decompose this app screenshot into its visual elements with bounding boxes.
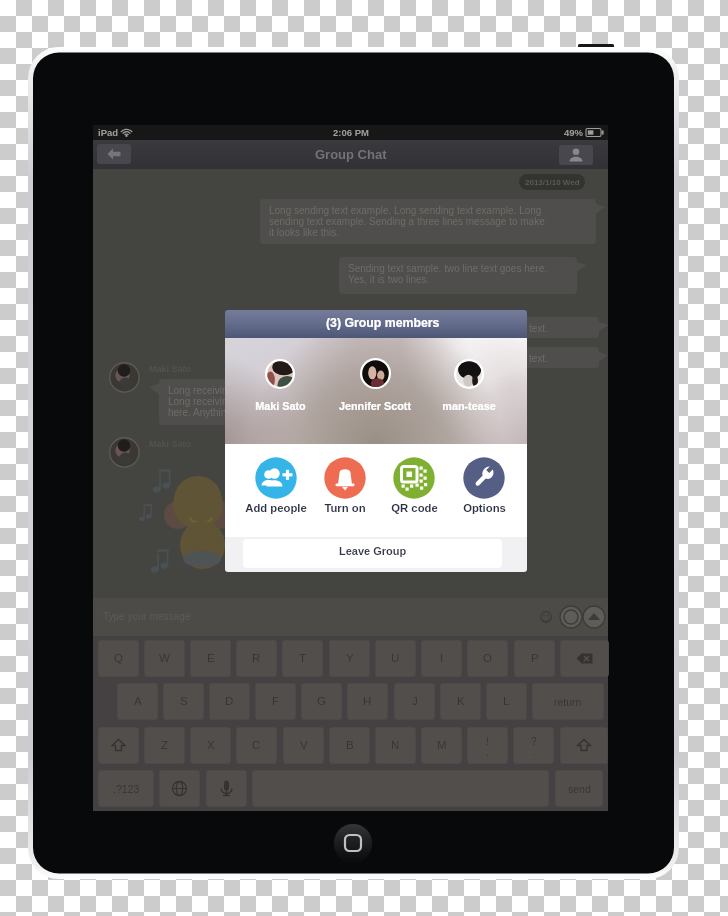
button[interactable]: Jennifer Scott [329,358,421,420]
button[interactable]: D [209,683,250,720]
button[interactable]: E [190,640,231,677]
button[interactable] [560,727,608,764]
button[interactable]: Turn on [301,457,389,519]
staticText: H [363,695,372,708]
button[interactable] [98,727,139,764]
staticText: Add people [245,502,307,515]
button[interactable]: Maki Sato [234,359,326,421]
staticText: Maki Sato [149,364,192,374]
staticText: C [252,739,261,752]
button[interactable]: Group members [559,145,593,165]
button[interactable]: F [255,683,296,720]
button[interactable]: return [532,683,604,720]
button[interactable]: send [555,770,603,807]
staticText: here. Anything here. [168,407,258,418]
staticText: , [486,747,489,756]
staticText: Options [463,502,506,515]
staticText: G [317,695,326,708]
staticText: Sending text sample, two line text goes … [348,263,548,274]
staticText: short text. [504,353,548,364]
button[interactable]: R [236,640,277,677]
staticText: ? [531,736,537,747]
button[interactable]: K [440,683,481,720]
button[interactable]: QR code [370,457,458,519]
staticText: ! [486,736,489,747]
button[interactable]: H [347,683,388,720]
staticText: iPad [98,127,119,138]
staticText: Long sending text example. Long sending … [269,205,542,216]
staticText: Type your message [103,611,191,622]
button[interactable]: M [421,727,462,764]
button[interactable]: G [301,683,342,720]
button[interactable]: B [329,727,370,764]
staticText: Yes, it is two lines. [348,274,430,285]
staticText: N [391,739,400,752]
staticText: Turn on [324,502,366,515]
staticText: L [503,695,510,708]
staticText: Long receiving text goes [168,396,277,407]
button[interactable]: Q [98,640,139,677]
button[interactable]: W [144,640,185,677]
staticText: F [272,695,280,708]
button[interactable] [159,770,200,807]
staticText: W [159,652,170,665]
staticText: O [483,652,492,665]
button[interactable] [206,770,247,807]
staticText: V [300,739,308,752]
staticText: Q [114,652,123,665]
staticText: T [299,652,307,665]
staticText: 49% [564,127,584,138]
staticText: man-tease [442,400,496,412]
staticText: Group Chat [315,147,387,162]
staticText: I [440,652,444,665]
staticText: Maki Sato [255,400,306,412]
staticText: R [252,652,261,665]
button[interactable]: Back [97,144,131,164]
button[interactable]: man-tease [423,359,515,421]
staticText: 2013/1/10 Wed [525,178,580,187]
staticText: (3) Group members [326,316,440,330]
staticText: Jennifer Scott [339,400,411,412]
button[interactable]: O [467,640,508,677]
staticText: K [457,695,465,708]
button[interactable]: N [375,727,416,764]
staticText: A [134,695,142,708]
staticText: M [437,739,447,752]
button[interactable]: .?123 [98,770,154,807]
button[interactable]: P [514,640,555,677]
staticText: send [568,783,591,795]
staticText: U [391,652,400,665]
staticText: S [180,695,188,708]
staticText: Y [346,652,354,665]
staticText: QR code [391,502,438,515]
staticText: 2:06 PM [333,127,369,138]
staticText: return [554,696,582,708]
staticText: J [412,695,418,708]
button[interactable] [560,640,609,677]
staticText: Long receiving text example. [168,385,296,396]
button[interactable]: Leave Group [243,539,502,568]
staticText: sending text example. Sending a three li… [269,216,545,227]
button[interactable]: Add people [232,457,320,519]
staticText: it looks like this. [269,227,340,238]
staticText: D [225,695,234,708]
button[interactable]: Options [440,457,527,519]
staticText: .?123 [113,783,140,795]
staticText: Z [161,739,169,752]
